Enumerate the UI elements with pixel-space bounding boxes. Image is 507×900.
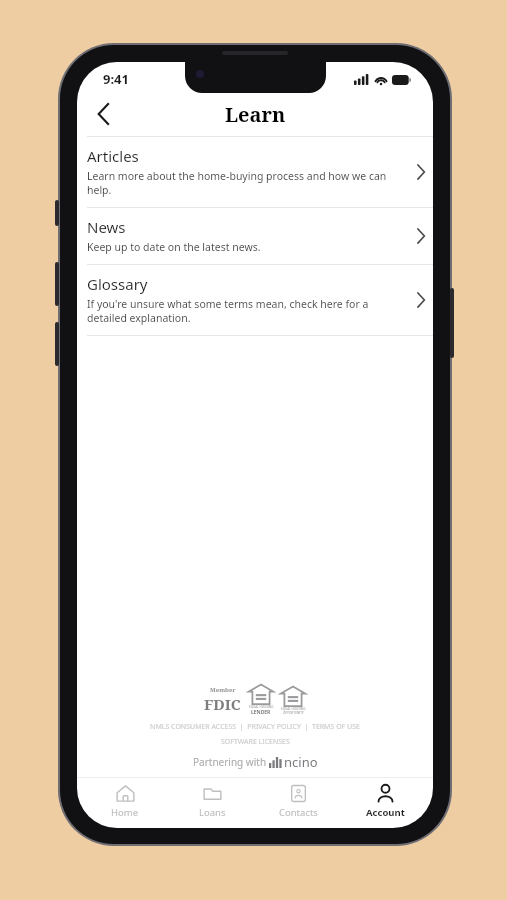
- staticText: Keep up to date on the latest news.: [87, 240, 261, 254]
- staticText: EQUAL HOUSING: [249, 705, 274, 709]
- staticText: News: [87, 217, 126, 237]
- button[interactable]: News: [77, 208, 433, 264]
- staticText: Member: [210, 686, 236, 694]
- staticText: Glossary: [87, 274, 148, 294]
- staticText: Articles: [87, 146, 139, 166]
- button[interactable]: Account: [346, 778, 424, 828]
- staticText: SOFTWARE LICENSES: [221, 737, 290, 747]
- staticText: ncino: [284, 753, 318, 771]
- staticText: Account: [366, 806, 405, 819]
- staticText: Learn: [225, 101, 286, 128]
- staticText: NMLS CONSUMER ACCESS | PRIVACY POLICY | …: [150, 722, 360, 732]
- button[interactable]: Home: [86, 778, 164, 828]
- button[interactable]: Glossary: [77, 265, 433, 335]
- staticText: Partnering with: [193, 755, 269, 769]
- button[interactable]: Articles: [77, 137, 433, 207]
- staticText: LENDER: [251, 709, 271, 716]
- staticText: EQUAL HOUSING: [281, 707, 306, 711]
- staticText: Contacts: [279, 806, 318, 819]
- staticText: Learn more about the home-buying process…: [87, 169, 409, 197]
- staticText: 9:41: [103, 70, 129, 88]
- staticText: Home: [111, 806, 139, 819]
- button[interactable]: Loans: [173, 778, 251, 828]
- button[interactable]: Back: [83, 94, 123, 134]
- button[interactable]: Contacts: [259, 778, 337, 828]
- staticText: Loans: [199, 806, 226, 819]
- staticText: If you're unsure what some terms mean, c…: [87, 297, 409, 325]
- staticText: OPPORTUNITY: [283, 711, 304, 715]
- staticText: FDIC: [204, 694, 241, 714]
